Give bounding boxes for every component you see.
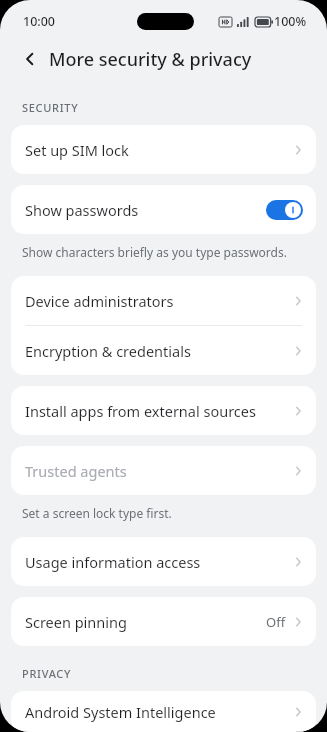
- staticText: Usage information access: [25, 552, 290, 572]
- button[interactable]: Set up SIM lock: [11, 125, 316, 174]
- staticText: More security & privacy: [49, 47, 252, 72]
- staticText: Set a screen lock type first.: [22, 505, 172, 521]
- button[interactable]: Encryption & credentials: [11, 326, 316, 375]
- button[interactable]: Show passwords: [11, 185, 316, 234]
- button[interactable]: Screen pinning: [11, 597, 316, 646]
- staticText: Show passwords: [25, 200, 266, 220]
- staticText: SECURITY: [22, 100, 79, 115]
- staticText: Trusted agents: [25, 461, 290, 481]
- staticText: 10:00: [23, 13, 56, 30]
- staticText: Show characters briefly as you type pass…: [22, 244, 287, 260]
- button[interactable]: Device administrators: [11, 276, 316, 325]
- staticText: Install apps from external sources: [25, 401, 290, 421]
- button[interactable]: Usage information access: [11, 537, 316, 586]
- button[interactable]: Trusted agents: [11, 446, 316, 495]
- button[interactable]: Android System Intelligence: [11, 691, 316, 732]
- staticText: 100%: [274, 13, 307, 30]
- staticText: Android System Intelligence: [25, 702, 290, 722]
- button[interactable]: Back: [16, 45, 44, 73]
- button[interactable]: Install apps from external sources: [11, 386, 316, 435]
- staticText: Device administrators: [25, 291, 290, 311]
- staticText: Encryption & credentials: [25, 341, 290, 361]
- staticText: Off: [266, 613, 286, 631]
- staticText: Screen pinning: [25, 612, 266, 632]
- staticText: Set up SIM lock: [25, 140, 290, 160]
- staticText: PRIVACY: [22, 666, 72, 681]
